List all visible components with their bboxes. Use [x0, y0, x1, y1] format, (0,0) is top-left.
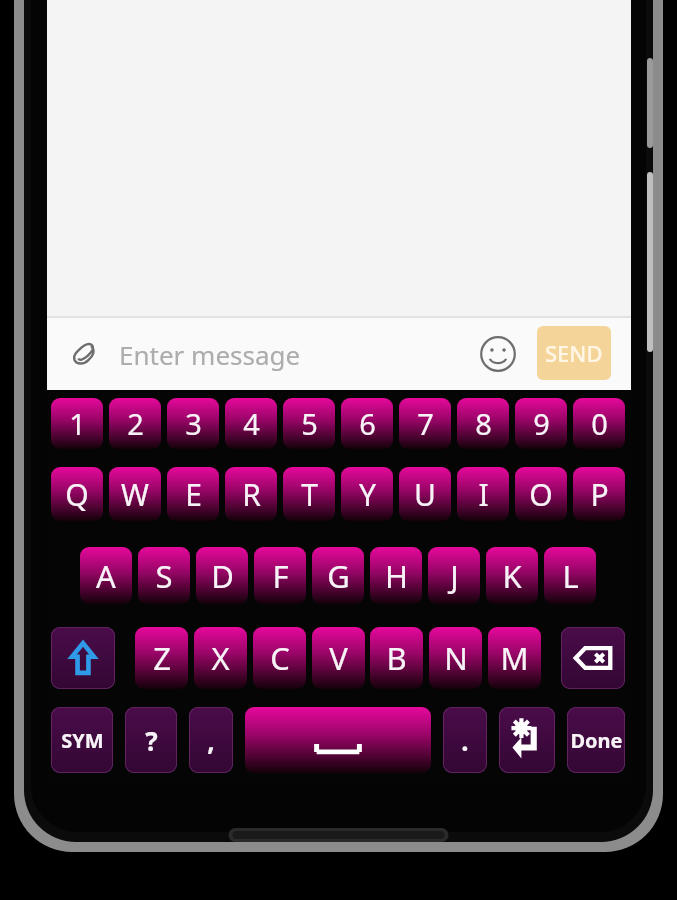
button[interactable]: 1: [51, 398, 103, 449]
staticText: Q: [65, 474, 89, 515]
button[interactable]: R: [225, 467, 277, 521]
staticText: Enter message: [119, 337, 301, 372]
staticText: S: [155, 555, 173, 597]
button[interactable]: Done: [567, 707, 625, 773]
button[interactable]: .: [443, 707, 487, 773]
button[interactable]: 9: [515, 398, 567, 449]
button[interactable]: 0: [573, 398, 625, 449]
button[interactable]: M: [488, 627, 541, 689]
button[interactable]: Space: [245, 707, 431, 773]
button[interactable]: 3: [167, 398, 219, 449]
button[interactable]: N: [429, 627, 482, 689]
button[interactable]: ,: [189, 707, 233, 773]
staticText: T: [301, 474, 318, 515]
button[interactable]: 6: [341, 398, 393, 449]
button[interactable]: F: [254, 547, 306, 604]
staticText: D: [211, 555, 234, 597]
button[interactable]: ?: [125, 707, 177, 773]
staticText: M: [500, 637, 529, 679]
button[interactable]: G: [312, 547, 364, 604]
button[interactable]: L: [544, 547, 596, 604]
staticText: 3: [185, 404, 202, 443]
button[interactable]: W: [109, 467, 161, 521]
staticText: Done: [570, 727, 623, 754]
button[interactable]: Backspace: [561, 627, 625, 689]
button[interactable]: B: [370, 627, 423, 689]
staticText: H: [385, 555, 408, 597]
staticText: SEND: [545, 338, 603, 368]
button[interactable]: Attach: [65, 334, 105, 374]
button[interactable]: X: [194, 627, 247, 689]
button[interactable]: Emoji: [476, 332, 520, 376]
staticText: X: [211, 637, 230, 679]
staticText: J: [450, 555, 459, 597]
staticText: ?: [145, 723, 158, 758]
button[interactable]: Y: [341, 467, 393, 521]
staticText: R: [242, 474, 261, 515]
button[interactable]: P: [573, 467, 625, 521]
staticText: 2: [127, 404, 144, 443]
staticText: I: [478, 474, 489, 515]
staticText: B: [386, 637, 407, 679]
button[interactable]: V: [312, 627, 365, 689]
staticText: P: [590, 474, 609, 515]
staticText: U: [414, 474, 436, 515]
staticText: N: [444, 637, 468, 679]
staticText: O: [529, 474, 553, 515]
staticText: 0: [591, 404, 608, 443]
button[interactable]: H: [370, 547, 422, 604]
button[interactable]: Z: [135, 627, 188, 689]
button[interactable]: 8: [457, 398, 509, 449]
button[interactable]: T: [283, 467, 335, 521]
button[interactable]: 4: [225, 398, 277, 449]
button[interactable]: 2: [109, 398, 161, 449]
staticText: 4: [243, 404, 260, 443]
staticText: Z: [153, 637, 171, 679]
staticText: 8: [475, 404, 492, 443]
staticText: 6: [359, 404, 376, 443]
staticText: K: [502, 555, 522, 597]
staticText: A: [96, 555, 116, 597]
staticText: 5: [301, 404, 318, 443]
staticText: Y: [359, 474, 376, 515]
button[interactable]: 5: [283, 398, 335, 449]
staticText: C: [270, 637, 290, 679]
button[interactable]: D: [196, 547, 248, 604]
button[interactable]: SEND: [537, 326, 611, 380]
staticText: V: [329, 637, 348, 679]
staticText: 9: [533, 404, 550, 443]
staticText: 1: [69, 404, 86, 443]
staticText: L: [562, 555, 579, 597]
button[interactable]: A: [80, 547, 132, 604]
button[interactable]: Shift: [51, 627, 115, 689]
button[interactable]: I: [457, 467, 509, 521]
button[interactable]: E: [167, 467, 219, 521]
staticText: F: [272, 555, 289, 597]
staticText: SYM: [61, 727, 104, 754]
staticText: G: [327, 555, 350, 597]
button[interactable]: K: [486, 547, 538, 604]
button[interactable]: O: [515, 467, 567, 521]
staticText: W: [121, 474, 149, 515]
staticText: 7: [417, 404, 434, 443]
staticText: E: [185, 474, 202, 515]
button[interactable]: S: [138, 547, 190, 604]
staticText: .: [461, 723, 469, 758]
button[interactable]: 7: [399, 398, 451, 449]
button[interactable]: SYM: [51, 707, 113, 773]
button[interactable]: C: [253, 627, 306, 689]
button[interactable]: Q: [51, 467, 103, 521]
button[interactable]: Enter: [499, 707, 555, 773]
button[interactable]: U: [399, 467, 451, 521]
button[interactable]: J: [428, 547, 480, 604]
staticText: ,: [207, 723, 215, 758]
